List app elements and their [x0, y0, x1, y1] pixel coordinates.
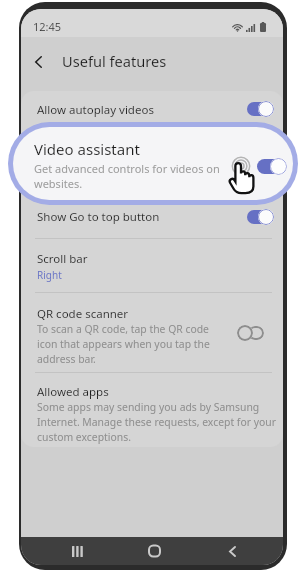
- button[interactable]: Video assistant: [13, 127, 293, 200]
- button[interactable]: [21, 95, 283, 123]
- button[interactable]: Home: [139, 537, 169, 565]
- staticText: Video assistant: [34, 139, 140, 159]
- button[interactable]: QR code scanner: [237, 325, 264, 341]
- staticText: Allow autoplay videos: [37, 102, 154, 118]
- staticText: Get advanced controls for videos on webs…: [34, 161, 220, 191]
- button[interactable]: Video assistant: [257, 158, 287, 175]
- button[interactable]: [21, 202, 283, 230]
- button[interactable]: Navigate up: [23, 47, 53, 77]
- staticText: Allowed apps: [37, 384, 109, 400]
- staticText: To scan a QR code, tap the QR code icon …: [37, 322, 210, 366]
- button[interactable]: [21, 298, 283, 372]
- button[interactable]: [21, 244, 283, 288]
- staticText: QR code scanner: [37, 306, 129, 322]
- button[interactable]: Back: [217, 537, 247, 565]
- button[interactable]: [21, 378, 283, 446]
- staticText: 12:45: [33, 19, 62, 34]
- staticText: Some apps may sending you ads by Samsung…: [37, 400, 276, 444]
- staticText: Right: [37, 268, 62, 282]
- staticText: Show Go to top button: [37, 209, 160, 225]
- button[interactable]: Show Go to top button: [247, 209, 274, 225]
- staticText: Scroll bar: [37, 251, 88, 267]
- button[interactable]: Allow autoplay videos: [247, 101, 274, 117]
- staticText: Useful features: [62, 51, 167, 71]
- button[interactable]: Recent apps: [62, 537, 92, 565]
